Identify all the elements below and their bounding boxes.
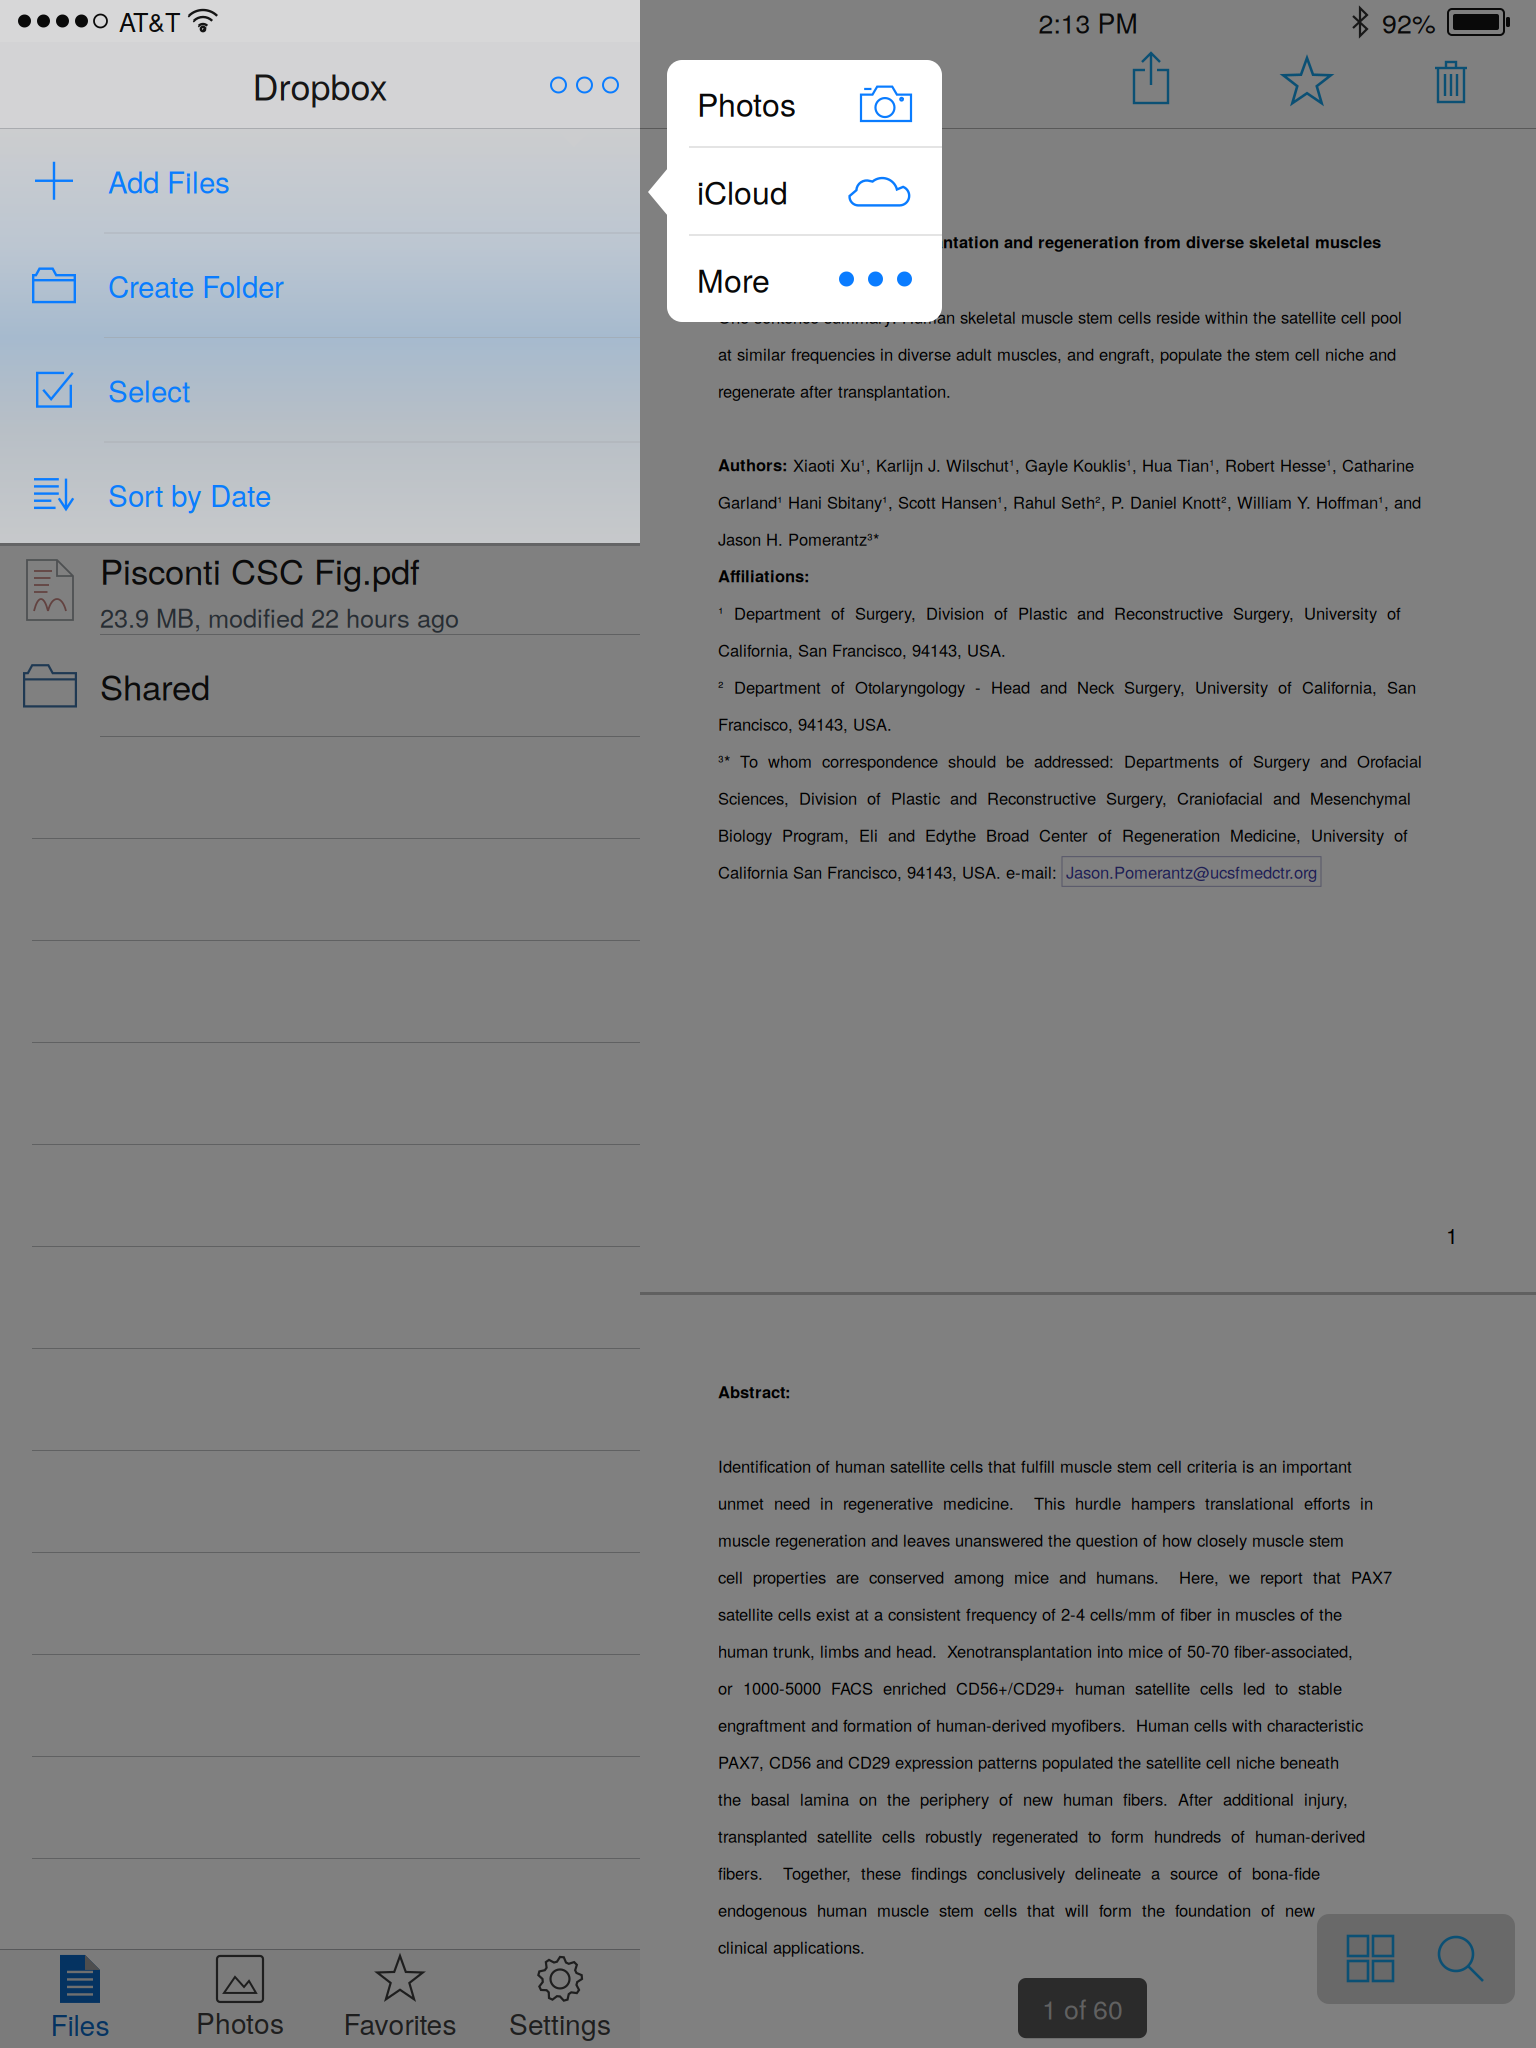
staticText: Files xyxy=(50,2004,109,2044)
staticText: transplanted satellite cells robustly re… xyxy=(718,1824,1365,1847)
staticText: Xiaoti Xu¹, Karlijn J. Wilschut¹, Gayle … xyxy=(788,453,1414,476)
staticText: or 1000-5000 FACS enriched CD56+/CD29+ h… xyxy=(718,1676,1342,1699)
button[interactable]: Settings xyxy=(480,1950,640,2048)
button[interactable]: iCloud xyxy=(667,147,942,234)
staticText: Pisconti CSC Fig.pdf xyxy=(100,545,420,595)
staticText: Photos xyxy=(196,2002,284,2042)
staticText: 2:13 PM xyxy=(1038,3,1137,41)
staticText: Jason.Pomerantz@ucsfmedctr.org xyxy=(1066,860,1317,883)
staticText: Add Files xyxy=(108,160,230,202)
staticText: Photos xyxy=(697,80,796,126)
button[interactable]: Select xyxy=(0,338,640,441)
staticText: at similar frequencies in diverse adult … xyxy=(718,342,1396,365)
staticText: 92% xyxy=(1382,3,1436,41)
staticText: endogenous human muscle stem cells that … xyxy=(718,1898,1315,1921)
button[interactable]: Favorite xyxy=(1256,43,1358,129)
button[interactable]: Pisconti CSC Fig.pdf xyxy=(0,546,640,634)
staticText: ³* To whom correspondence should be addr… xyxy=(718,749,1422,772)
staticText: 1 of 60 xyxy=(1042,1989,1123,2027)
staticText: California San Francisco, 94143, USA. e-… xyxy=(718,860,1062,883)
staticText: Sciences, Division of Plastic and Recons… xyxy=(718,786,1411,809)
staticText: ² Department of Otolaryngology - Head an… xyxy=(718,675,1416,698)
staticText: the basal lamina on the periphery of new… xyxy=(718,1787,1348,1810)
button[interactable]: Delete xyxy=(1408,44,1494,128)
staticText: satellite cells exist at a consistent fr… xyxy=(718,1602,1342,1625)
staticText: unmet need in regenerative medicine. Thi… xyxy=(718,1491,1373,1514)
staticText: muscle regeneration and leaves unanswere… xyxy=(718,1528,1344,1551)
button[interactable]: Photos xyxy=(667,59,942,146)
button[interactable]: More xyxy=(529,49,640,120)
staticText: California, San Francisco, 94143, USA. xyxy=(718,638,1006,661)
staticText: Identification of human satellite cells … xyxy=(718,1454,1352,1477)
button[interactable]: Share xyxy=(1106,45,1196,127)
button[interactable]: Favorites xyxy=(320,1950,480,2048)
staticText: engraftment and formation of human-deriv… xyxy=(718,1713,1363,1736)
staticText: One sentence summary: Human skeletal mus… xyxy=(718,305,1402,328)
staticText: Abstract: xyxy=(718,1380,791,1403)
button[interactable]: Files xyxy=(0,1950,160,2048)
staticText: ¹ Department of Surgery, Division of Pla… xyxy=(718,601,1401,624)
staticText: Select xyxy=(108,369,190,411)
staticText: Human satellite cell transplantation and… xyxy=(718,230,1381,253)
button[interactable]: Search xyxy=(1437,1935,1485,1983)
staticText: Shared xyxy=(100,661,210,710)
staticText: PAX7, CD56 and CD29 expression patterns … xyxy=(718,1750,1339,1773)
button[interactable]: Create Folder xyxy=(0,233,640,337)
staticText: Settings xyxy=(509,2003,611,2043)
staticText: Authors: xyxy=(718,453,788,476)
staticText: 1 xyxy=(1446,1219,1458,1250)
staticText: Biology Program, Eli and Edythe Broad Ce… xyxy=(718,823,1408,846)
button[interactable]: More xyxy=(667,235,942,322)
staticText: Favorites xyxy=(343,2003,456,2043)
staticText: Francisco, 94143, USA. xyxy=(718,712,892,735)
staticText: Create Folder xyxy=(108,264,284,306)
button[interactable]: Sort by Date xyxy=(0,442,640,546)
button[interactable]: Thumbnails xyxy=(1347,1935,1395,1983)
button[interactable]: Add Files xyxy=(0,129,640,232)
staticText: cell properties are conserved among mice… xyxy=(718,1565,1392,1588)
button[interactable]: Photos xyxy=(160,1950,320,2048)
staticText: 23.9 MB, modified 22 hours ago xyxy=(100,599,459,635)
staticText: Dropbox xyxy=(252,59,387,111)
staticText: Sort by Date xyxy=(108,473,271,515)
staticText: Jason H. Pomerantz³* xyxy=(718,527,879,550)
staticText: fibers. Together, these findings conclus… xyxy=(718,1861,1320,1884)
staticText: AT&T xyxy=(119,3,180,39)
staticText: Garland¹ Hani Sbitany¹, Scott Hansen¹, R… xyxy=(718,490,1421,513)
staticText: clinical applications. xyxy=(718,1935,865,1958)
staticText: iCloud xyxy=(697,168,788,214)
staticText: More xyxy=(697,256,770,302)
button[interactable]: Shared xyxy=(0,635,640,736)
staticText: regenerate after transplantation. xyxy=(718,379,951,402)
staticText: human trunk, limbs and head. Xenotranspl… xyxy=(718,1639,1353,1662)
staticText: Affiliations: xyxy=(718,564,810,587)
